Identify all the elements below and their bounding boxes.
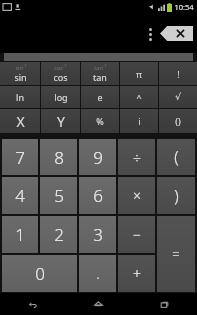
button[interactable]: % — [81, 109, 119, 133]
button[interactable]: − — [118, 216, 155, 253]
button[interactable]: ! — [159, 62, 197, 85]
staticText: 0 — [35, 262, 45, 285]
button[interactable]: 7 — [2, 139, 38, 175]
staticText: 1 — [15, 223, 25, 246]
staticText: 10:54 — [174, 2, 194, 12]
button[interactable]: Back — [0, 293, 65, 315]
staticText: − — [133, 225, 141, 244]
button[interactable]: 9 — [79, 139, 116, 175]
staticText: % — [96, 115, 104, 127]
button[interactable]: More options — [143, 23, 157, 45]
button[interactable]: Home — [65, 293, 131, 315]
button[interactable]: ) — [157, 177, 195, 214]
button[interactable]: cos⁻¹ — [41, 62, 80, 85]
button[interactable]: Recent apps — [131, 293, 197, 315]
staticText: 2 — [54, 223, 64, 246]
staticText: X — [16, 112, 25, 131]
button[interactable]: 6 — [79, 177, 116, 214]
staticText: ÷ — [133, 148, 141, 167]
staticText: log — [54, 91, 68, 103]
staticText: + — [133, 264, 141, 283]
button[interactable]: + — [118, 255, 155, 292]
staticText: Y — [57, 112, 65, 131]
staticText: 3 — [93, 223, 103, 246]
button[interactable]: 1 — [2, 216, 38, 253]
staticText: ( — [174, 146, 179, 168]
button[interactable]: tan⁻¹ — [81, 62, 119, 85]
button[interactable]: sin⁻¹ — [0, 62, 40, 85]
button[interactable]: X — [0, 109, 40, 133]
button[interactable]: Y — [41, 109, 80, 133]
staticText: sin — [14, 71, 27, 83]
button[interactable]: = — [157, 216, 195, 292]
button[interactable]: log — [41, 86, 80, 108]
button[interactable]: ÷ — [118, 139, 155, 175]
staticText: tan⁻¹ — [94, 64, 107, 71]
button[interactable]: Delete — [160, 26, 193, 41]
staticText: i — [138, 115, 141, 127]
staticText: ) — [174, 185, 179, 207]
staticText: × — [133, 186, 141, 205]
staticText: 9 — [93, 146, 103, 169]
staticText: cos — [53, 71, 68, 83]
button[interactable]: 3 — [79, 216, 116, 253]
staticText: 5 — [54, 184, 64, 207]
staticText: sin⁻¹ — [15, 64, 27, 71]
staticText: ^ — [136, 91, 142, 103]
button[interactable]: i — [120, 109, 158, 133]
staticText: . — [96, 264, 100, 283]
button[interactable]: e — [81, 86, 119, 108]
staticText: 4 — [15, 184, 25, 207]
staticText: √ — [175, 92, 181, 102]
button[interactable]: × — [118, 177, 155, 214]
button[interactable]: () — [159, 109, 197, 133]
staticText: () — [175, 115, 181, 127]
staticText: ln — [16, 91, 24, 103]
button[interactable]: 5 — [40, 177, 77, 214]
button[interactable]: 2 — [40, 216, 77, 253]
staticText: 7 — [15, 146, 25, 169]
staticText: = — [172, 245, 180, 263]
staticText: π — [136, 68, 142, 80]
button[interactable]: ( — [157, 139, 195, 175]
button[interactable]: 8 — [40, 139, 77, 175]
button[interactable]: ^ — [120, 86, 158, 108]
button[interactable]: π — [120, 62, 158, 85]
staticText: e — [97, 91, 103, 103]
staticText: 6 — [93, 184, 103, 207]
button[interactable]: √ — [159, 86, 197, 108]
staticText: tan — [93, 71, 107, 83]
staticText: cos⁻¹ — [54, 64, 67, 71]
button[interactable]: ln — [0, 86, 40, 108]
staticText: 8 — [54, 146, 64, 169]
button[interactable]: 4 — [2, 177, 38, 214]
button[interactable]: . — [79, 255, 116, 292]
button[interactable]: 0 — [2, 255, 77, 292]
staticText: ! — [177, 68, 180, 80]
